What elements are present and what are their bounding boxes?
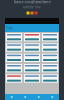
button[interactable]: Tab bbox=[32, 94, 45, 100]
button[interactable] bbox=[24, 64, 40, 72]
staticText: Title bbox=[6, 25, 13, 31]
button[interactable] bbox=[42, 33, 58, 41]
staticText: subtitle line bbox=[23, 5, 41, 9]
button[interactable] bbox=[6, 43, 22, 52]
button[interactable]: Tab bbox=[5, 94, 18, 100]
button[interactable] bbox=[42, 43, 58, 52]
button[interactable]: Tab bbox=[45, 94, 59, 100]
button[interactable] bbox=[6, 74, 22, 83]
button[interactable] bbox=[6, 64, 22, 72]
button[interactable] bbox=[24, 33, 40, 41]
button[interactable] bbox=[24, 74, 40, 83]
button[interactable] bbox=[42, 74, 58, 83]
button[interactable] bbox=[6, 54, 22, 62]
button[interactable]: Tab bbox=[18, 94, 32, 100]
button[interactable] bbox=[24, 43, 40, 52]
button[interactable] bbox=[42, 54, 58, 62]
staticText: Some small text here bbox=[13, 0, 50, 4]
button[interactable] bbox=[42, 64, 58, 72]
button[interactable] bbox=[6, 33, 22, 41]
button[interactable] bbox=[24, 54, 40, 62]
